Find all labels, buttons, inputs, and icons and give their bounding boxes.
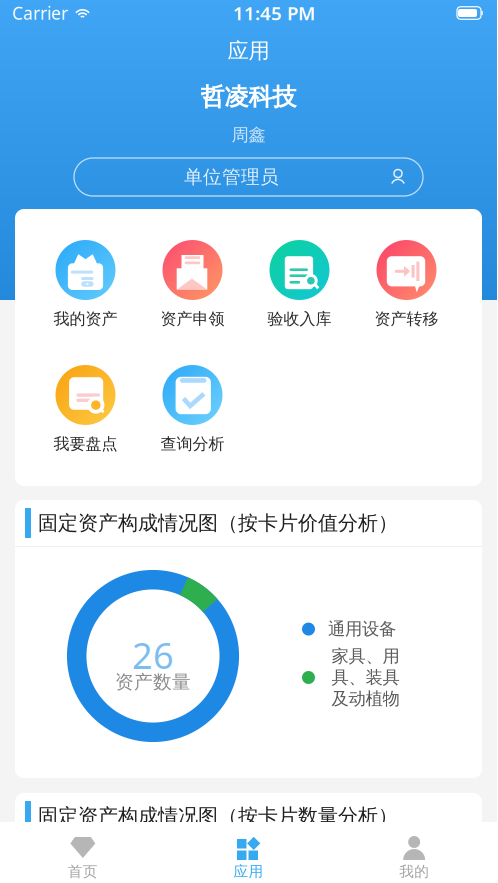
staticText: 资产申领: [160, 309, 224, 329]
staticText: 周鑫: [231, 124, 265, 146]
staticText: 通用设备: [328, 618, 396, 640]
staticText: 验收入库: [267, 309, 331, 329]
staticText: 查询分析: [160, 434, 224, 454]
button[interactable]: 我要盘点: [32, 365, 139, 453]
staticText: 11:45 PM: [233, 1, 315, 25]
staticText: 哲凌科技: [200, 82, 296, 112]
staticText: 家具、用具、装具及动植物: [331, 646, 399, 709]
staticText: 单位管理员: [184, 165, 279, 188]
staticText: 应用: [233, 862, 263, 880]
staticText: 应用: [227, 38, 269, 64]
staticText: 26: [132, 631, 174, 679]
staticText: 我要盘点: [53, 434, 117, 454]
button[interactable]: 应用: [166, 835, 331, 879]
staticText: 我的资产: [53, 309, 117, 329]
staticText: 固定资产构成情况图（按卡片价值分析）: [38, 511, 398, 535]
staticText: 首页: [68, 862, 98, 880]
button[interactable]: 我的资产: [32, 240, 139, 328]
staticText: 固定资产构成情况图（按卡片数量分析）: [38, 804, 398, 828]
button[interactable]: 验收入库: [246, 240, 353, 328]
staticText: 资产转移: [374, 309, 438, 329]
button[interactable]: 首页: [0, 835, 166, 879]
button[interactable]: 我的: [331, 835, 497, 879]
staticText: Carrier: [12, 1, 68, 24]
staticText: 我的: [399, 862, 429, 880]
button[interactable]: 资产转移: [353, 240, 460, 328]
staticText: 资产数量: [115, 670, 191, 693]
button[interactable]: 查询分析: [139, 365, 246, 453]
button[interactable]: 资产申领: [139, 240, 246, 328]
